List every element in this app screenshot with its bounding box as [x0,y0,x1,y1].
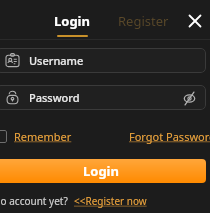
staticText: Password [29,90,80,105]
button[interactable]: Show password [180,89,198,107]
staticText: No account yet? [0,194,68,208]
button[interactable]: Password [0,85,206,110]
staticText: <<Register now [74,194,147,208]
button[interactable]: Forgot Password [129,129,210,144]
staticText: Forgot Password [129,129,210,144]
button[interactable]: Remember [0,126,72,146]
button[interactable]: <<Register now [74,194,147,208]
staticText: Login [54,12,90,30]
staticText: Login [83,162,119,180]
staticText: Username [29,53,84,68]
staticText: Register [118,12,169,30]
button[interactable]: Login [0,159,206,183]
button[interactable]: Register [112,0,174,39]
button[interactable]: Username [0,48,206,73]
staticText: Remember [14,129,72,144]
button[interactable]: Login [42,0,102,39]
button[interactable]: Close [182,8,208,34]
